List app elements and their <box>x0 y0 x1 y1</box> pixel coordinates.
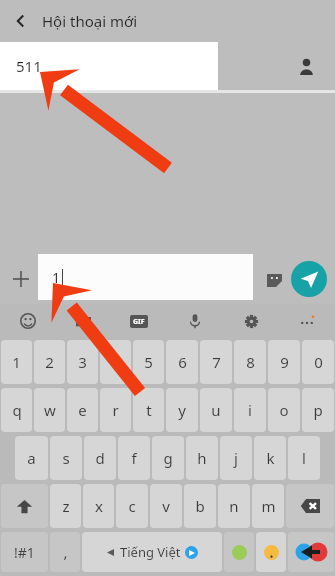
staticText: Hội thoại mới <box>42 11 138 31</box>
button[interactable]: Tiếng Việt <box>82 532 222 572</box>
button[interactable]: b <box>184 484 216 528</box>
staticText: 8 <box>246 352 255 372</box>
staticText: r <box>112 400 119 420</box>
staticText: 9 <box>280 352 289 372</box>
staticText: s <box>62 448 70 468</box>
staticText: d <box>95 448 105 468</box>
button[interactable]: k <box>254 436 286 480</box>
button[interactable]: f <box>118 436 150 480</box>
button[interactable]: g <box>152 436 184 480</box>
staticText: 6 <box>178 352 187 372</box>
button[interactable]: r <box>100 388 131 432</box>
staticText: x <box>95 496 103 516</box>
button[interactable]: 8 <box>234 340 266 384</box>
button[interactable]: 7 <box>200 340 232 384</box>
staticText: 4 <box>111 352 120 372</box>
staticText: 511 <box>16 56 42 76</box>
staticText: a <box>27 448 36 468</box>
button[interactable]: 1 <box>38 254 253 300</box>
button[interactable]: s <box>50 436 82 480</box>
button[interactable]: j <box>220 436 252 480</box>
button[interactable]: u <box>200 388 232 432</box>
staticText: Tiếng Việt <box>120 543 181 561</box>
staticText: 0 <box>314 352 323 372</box>
button[interactable]: m <box>252 484 284 528</box>
button[interactable]: More <box>279 304 335 338</box>
button[interactable]: GIF <box>111 304 167 338</box>
staticText: w <box>44 400 56 420</box>
staticText: q <box>12 400 22 420</box>
staticText: GIF <box>133 317 145 327</box>
button[interactable]: Back <box>0 0 42 42</box>
staticText: j <box>234 448 238 468</box>
staticText: !#1 <box>14 543 35 562</box>
button[interactable]: Backspace <box>286 484 334 528</box>
button[interactable]: o <box>268 388 300 432</box>
staticText: i <box>248 400 252 420</box>
staticText: 5 <box>144 352 153 372</box>
button[interactable]: c <box>116 484 148 528</box>
staticText: c <box>128 496 136 516</box>
button[interactable]: t <box>133 388 164 432</box>
staticText: e <box>78 400 87 420</box>
button[interactable]: x <box>83 484 114 528</box>
staticText: b <box>195 496 205 516</box>
button[interactable]: 2 <box>34 340 65 384</box>
button[interactable]: e <box>67 388 98 432</box>
button[interactable]: 9 <box>268 340 300 384</box>
button[interactable]: w <box>34 388 65 432</box>
button[interactable]: v <box>150 484 182 528</box>
button[interactable]: p <box>302 388 334 432</box>
button[interactable]: 0 <box>302 340 334 384</box>
button[interactable]: , <box>50 532 80 572</box>
button[interactable]: Contacts <box>289 49 323 83</box>
button[interactable]: 6 <box>166 340 198 384</box>
button[interactable]: !#1 <box>1 532 48 572</box>
button[interactable]: Enter <box>288 532 334 572</box>
staticText: 7 <box>212 352 221 372</box>
button[interactable]: Clipboard <box>55 304 111 338</box>
staticText: k <box>266 448 275 468</box>
button[interactable]: 1 <box>1 340 32 384</box>
staticText: 3 <box>78 352 87 372</box>
button[interactable]: Send <box>291 261 327 297</box>
staticText: l <box>302 448 306 468</box>
button[interactable]: Shift <box>1 484 48 528</box>
button[interactable]: Stickers <box>261 266 287 292</box>
button[interactable]: l <box>288 436 320 480</box>
staticText: p <box>313 400 323 420</box>
staticText: 1 <box>52 268 61 287</box>
button[interactable]: Voice input <box>167 304 223 338</box>
button[interactable]: Settings <box>223 304 279 338</box>
button[interactable]: h <box>186 436 218 480</box>
staticText: m <box>261 496 276 516</box>
button[interactable]: i <box>234 388 266 432</box>
button[interactable]: z <box>50 484 81 528</box>
button[interactable]: 4 <box>100 340 131 384</box>
staticText: 2 <box>45 352 54 372</box>
button[interactable]: Emoji <box>0 304 55 338</box>
button[interactable]: 5 <box>133 340 164 384</box>
staticText: y <box>178 400 186 420</box>
staticText: t <box>146 400 152 420</box>
button[interactable]: Green <box>224 532 254 572</box>
button[interactable]: 511 <box>0 42 218 90</box>
button[interactable]: d <box>84 436 116 480</box>
button[interactable]: y <box>166 388 198 432</box>
staticText: , <box>63 542 68 562</box>
staticText: h <box>197 448 207 468</box>
staticText: 1 <box>12 352 21 372</box>
button[interactable]: q <box>1 388 32 432</box>
staticText: z <box>62 496 70 516</box>
button[interactable]: n <box>218 484 250 528</box>
staticText: n <box>229 496 239 516</box>
staticText: u <box>211 400 221 420</box>
staticText: f <box>131 448 137 468</box>
button[interactable]: Period <box>256 532 286 572</box>
button[interactable]: 3 <box>67 340 98 384</box>
staticText: g <box>163 448 173 468</box>
button[interactable]: Add attachment <box>6 264 36 294</box>
button[interactable]: a <box>15 436 48 480</box>
staticText: o <box>279 400 289 420</box>
staticText: v <box>162 496 170 516</box>
